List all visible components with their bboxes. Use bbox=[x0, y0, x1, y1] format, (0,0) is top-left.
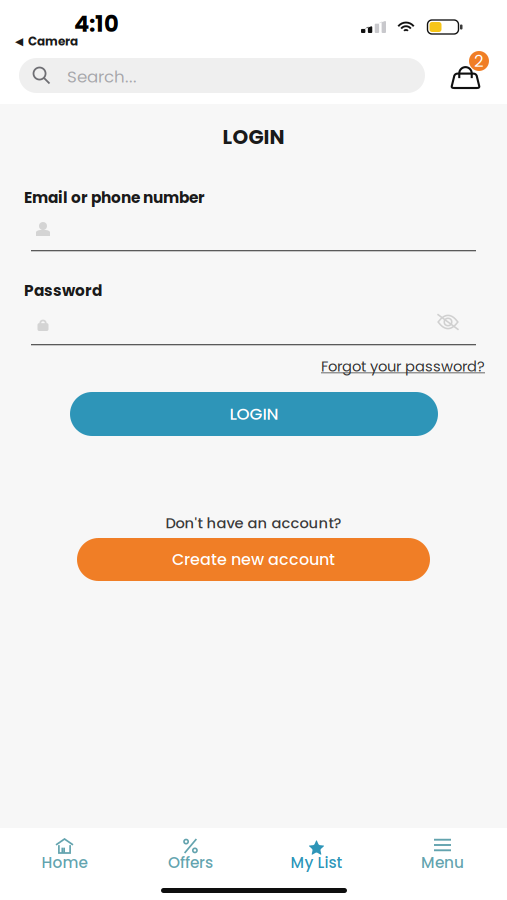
staticText: Create new account bbox=[172, 548, 335, 571]
staticText: Email or phone number bbox=[24, 187, 205, 208]
button[interactable]: LOGIN bbox=[70, 392, 438, 436]
button[interactable]: Home bbox=[1, 837, 127, 883]
button[interactable]: Show password bbox=[428, 306, 468, 338]
staticText: Menu bbox=[421, 852, 464, 873]
button[interactable]: Offers bbox=[127, 837, 253, 883]
staticText: Don't have an account? bbox=[165, 513, 341, 533]
staticText: 4:10 bbox=[74, 8, 119, 40]
button[interactable]: Create new account bbox=[77, 538, 430, 581]
staticText: LOGIN bbox=[229, 402, 278, 426]
button[interactable]: Menu bbox=[379, 837, 505, 883]
staticText: 2 bbox=[474, 49, 484, 73]
staticText: Password bbox=[24, 280, 102, 301]
staticText: Search... bbox=[67, 65, 137, 88]
staticText: Camera bbox=[28, 33, 78, 50]
staticText: LOGIN bbox=[222, 123, 284, 151]
button[interactable]: My List bbox=[253, 837, 379, 883]
staticText: Offers bbox=[168, 852, 213, 873]
staticText: Forgot your password? bbox=[321, 356, 485, 376]
staticText: My List bbox=[290, 852, 342, 873]
staticText: Home bbox=[41, 852, 87, 873]
button[interactable]: Cart, 2 items bbox=[446, 46, 494, 92]
button[interactable]: Forgot your password? bbox=[321, 356, 485, 376]
staticText: ◀ bbox=[15, 35, 23, 48]
